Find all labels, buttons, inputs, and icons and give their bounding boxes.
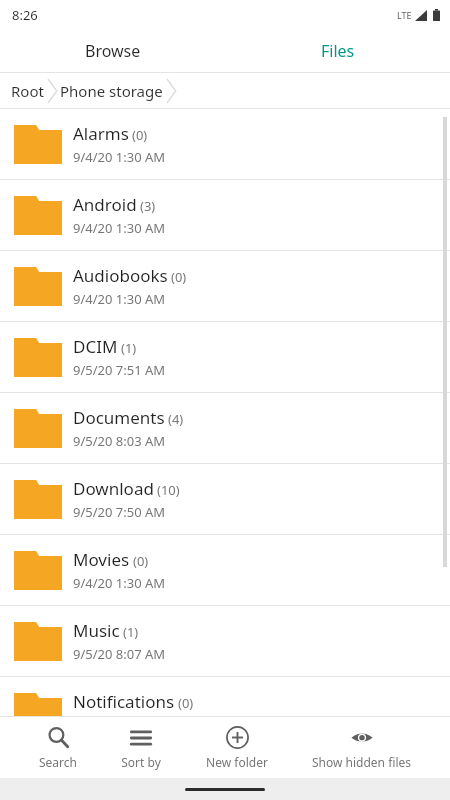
- staticText: (10): [157, 481, 180, 499]
- button[interactable]: Files: [225, 30, 450, 72]
- staticText: Search: [39, 754, 77, 770]
- staticText: (0): [133, 552, 149, 570]
- staticText: Files: [321, 40, 355, 62]
- staticText: Browse: [85, 40, 141, 62]
- staticText: (0): [132, 126, 148, 144]
- button[interactable]: Movies: [0, 535, 450, 605]
- staticText: Alarms: [73, 122, 129, 145]
- staticText: Documents: [73, 406, 165, 429]
- staticText: 8:26: [12, 6, 38, 24]
- button[interactable]: New folder: [200, 722, 274, 772]
- staticText: New folder: [206, 754, 268, 770]
- staticText: (1): [123, 623, 139, 641]
- staticText: Sort by: [121, 754, 161, 770]
- button[interactable]: Android: [0, 180, 450, 250]
- staticText: LTE: [397, 9, 412, 21]
- staticText: 9/4/20 1:30 AM: [73, 219, 166, 237]
- button[interactable]: Sort by: [115, 722, 167, 772]
- staticText: 9/4/20 1:30 AM: [73, 290, 166, 308]
- staticText: (4): [168, 410, 184, 428]
- staticText: Phone storage: [60, 81, 163, 101]
- staticText: Movies: [73, 548, 130, 571]
- staticText: (3): [140, 197, 156, 215]
- button[interactable]: Show hidden files: [306, 722, 417, 772]
- staticText: 9/5/20 8:07 AM: [73, 645, 166, 663]
- staticText: Show hidden files: [312, 754, 411, 770]
- staticText: Music: [73, 619, 120, 642]
- button[interactable]: Phone storage: [60, 81, 163, 101]
- button[interactable]: Documents: [0, 393, 450, 463]
- button[interactable]: Audiobooks: [0, 251, 450, 321]
- button[interactable]: Download: [0, 464, 450, 534]
- staticText: 9/4/20 1:30 AM: [73, 148, 166, 166]
- staticText: Audiobooks: [73, 264, 168, 287]
- staticText: (1): [121, 339, 137, 357]
- staticText: 9/5/20 7:50 AM: [73, 503, 166, 521]
- button[interactable]: Music: [0, 606, 450, 676]
- staticText: Notifications: [73, 690, 175, 713]
- staticText: 9/4/20 1:30 AM: [73, 716, 166, 734]
- staticText: 9/4/20 1:30 AM: [73, 574, 166, 592]
- staticText: (0): [178, 694, 194, 712]
- button[interactable]: Search: [33, 722, 83, 772]
- button[interactable]: Alarms: [0, 109, 450, 179]
- staticText: 9/5/20 8:03 AM: [73, 432, 166, 450]
- staticText: Root: [11, 81, 44, 101]
- button[interactable]: Browse: [0, 30, 225, 72]
- staticText: Android: [73, 193, 137, 216]
- staticText: (0): [171, 268, 187, 286]
- staticText: Download: [73, 477, 154, 500]
- staticText: 9/5/20 7:51 AM: [73, 361, 166, 379]
- staticText: DCIM: [73, 335, 118, 358]
- button[interactable]: DCIM: [0, 322, 450, 392]
- button[interactable]: Notifications: [0, 677, 450, 747]
- button[interactable]: Root: [11, 81, 44, 101]
